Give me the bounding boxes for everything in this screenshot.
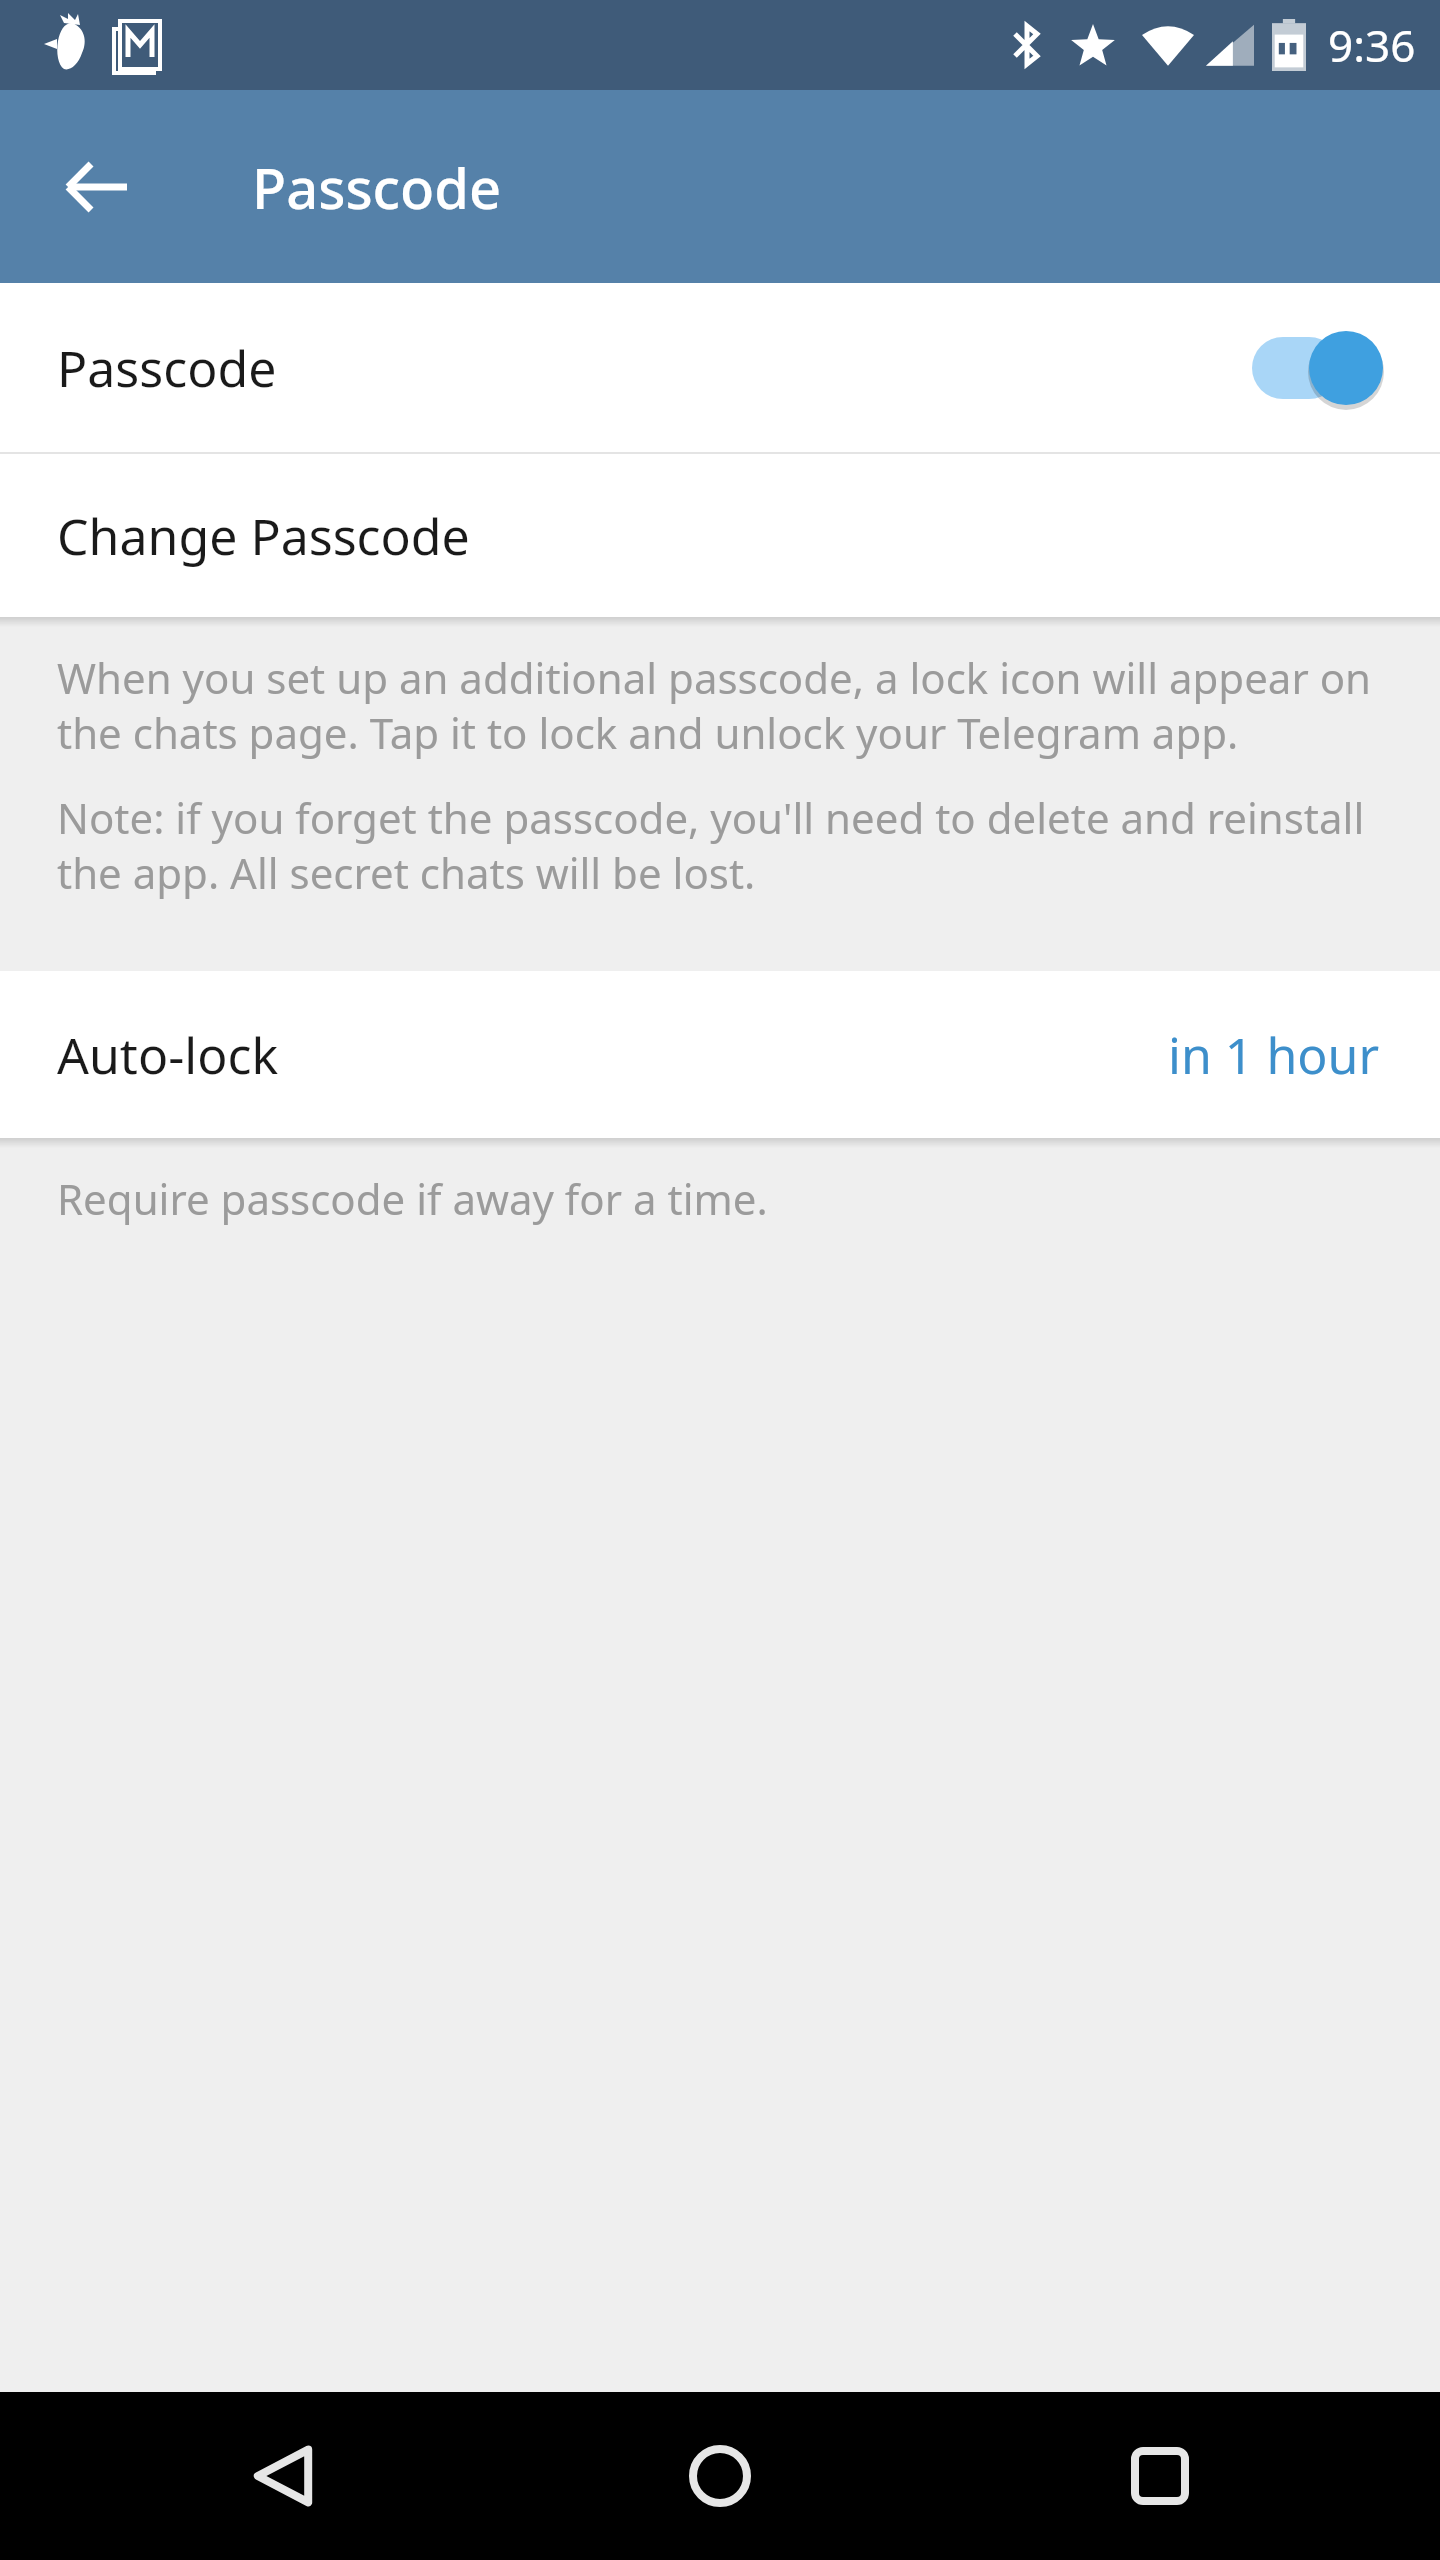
staticText: Passcode — [57, 334, 277, 402]
button[interactable]: Change Passcode — [0, 454, 1440, 617]
button[interactable]: Recent apps — [1080, 2396, 1240, 2556]
button[interactable]: Passcode — [0, 283, 1440, 452]
staticText: in 1 hour — [1168, 1021, 1380, 1089]
staticText: When you set up an additional passcode, … — [57, 649, 1380, 761]
staticText: Note: if you forget the passcode, you'll… — [57, 789, 1380, 901]
button[interactable]: Auto-lock — [0, 971, 1440, 1138]
staticText: Change Passcode — [57, 502, 470, 570]
button[interactable]: Home — [640, 2396, 800, 2556]
staticText: Passcode — [252, 149, 502, 225]
button[interactable]: Back — [203, 2396, 363, 2556]
button[interactable]: Back — [32, 123, 160, 251]
staticText: 9:36 — [1328, 15, 1416, 75]
staticText: Auto-lock — [57, 1021, 279, 1089]
staticText: Require passcode if away for a time. — [57, 1170, 768, 1227]
button[interactable]: Passcode toggle, on — [1242, 323, 1392, 413]
